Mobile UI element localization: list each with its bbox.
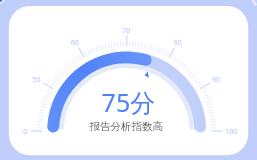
button[interactable]: 报告分析指数 75 分	[0, 0, 257, 160]
